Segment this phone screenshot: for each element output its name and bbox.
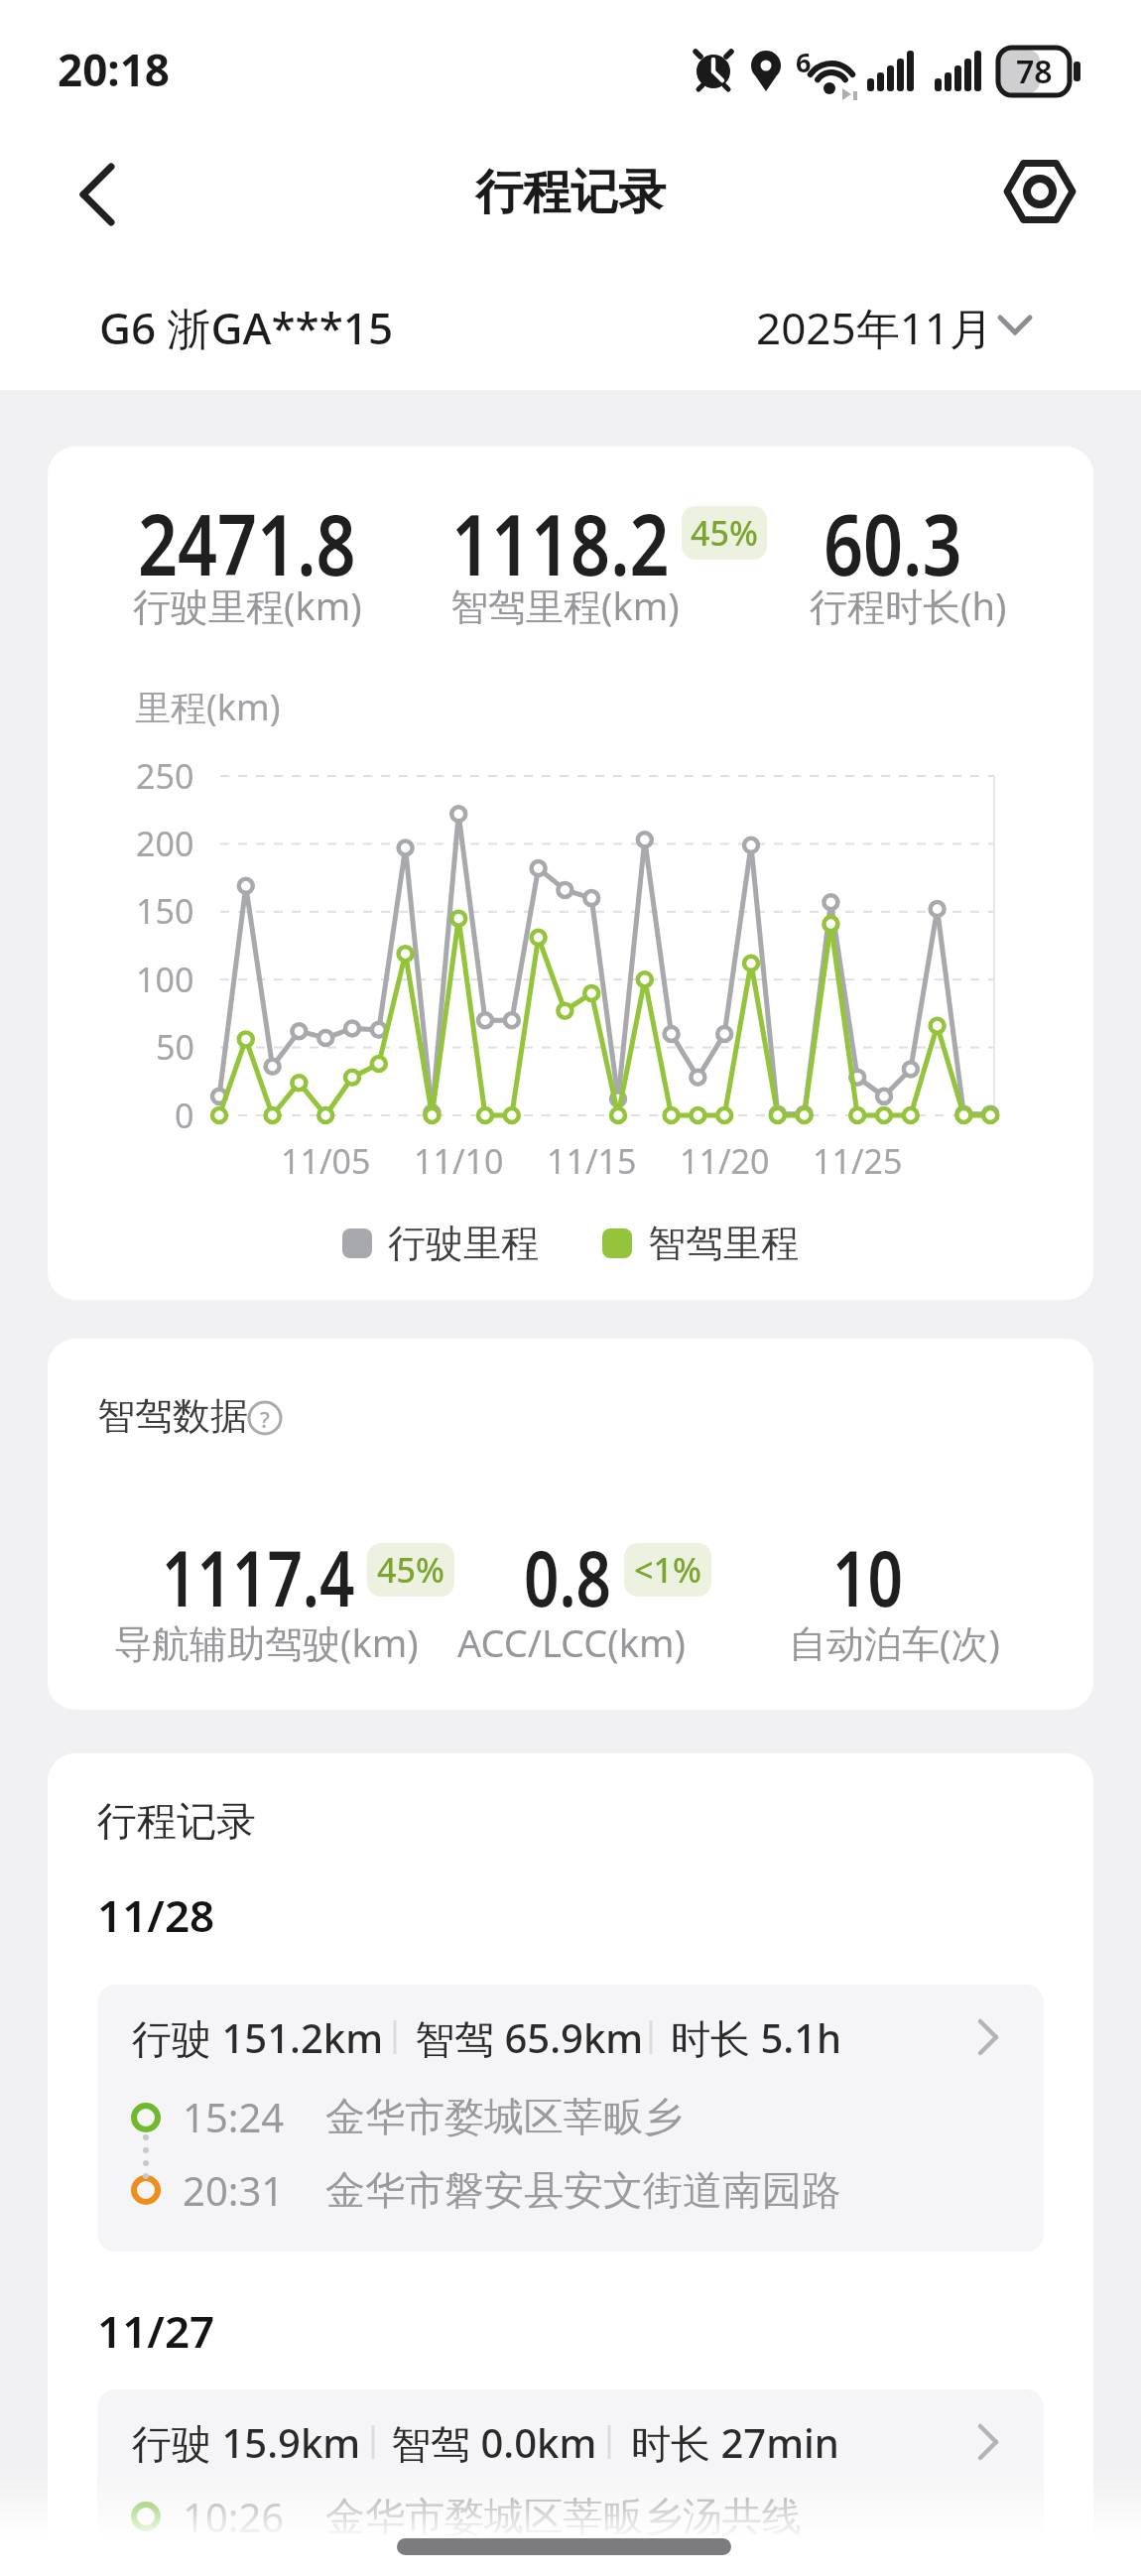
- staticText: 智驾里程: [648, 1220, 799, 1267]
- staticText: 行程时长(h): [810, 580, 1007, 631]
- staticText: 60.3: [824, 484, 962, 581]
- button[interactable]: [97, 2389, 1044, 2576]
- staticText: 自动泊车(次): [789, 1616, 1000, 1668]
- button[interactable]: [97, 1985, 1044, 2252]
- staticText: 金华市婺城区莘畈乡汤共线: [325, 2492, 802, 2541]
- staticText: 1118.2: [451, 484, 670, 581]
- staticText: 行程记录: [97, 1796, 256, 1846]
- staticText: 11/28: [97, 1885, 215, 1941]
- staticText: 智驾里程(km): [450, 580, 680, 631]
- staticText: 10:26: [183, 2490, 285, 2543]
- staticText: 金华市婺城区莘畈乡: [325, 2092, 683, 2141]
- staticText: 15:24: [183, 2090, 285, 2143]
- staticText: 行程记录: [475, 163, 666, 222]
- staticText: 2025年11月: [756, 298, 994, 353]
- staticText: 导航辅助驾驶(km): [114, 1616, 419, 1668]
- staticText: 11/15: [547, 1138, 637, 1184]
- staticText: 行驶里程: [388, 1220, 539, 1267]
- staticText: 45%: [691, 510, 758, 556]
- staticText: 10: [832, 1526, 903, 1614]
- staticText: 智驾 65.9km: [415, 2010, 644, 2065]
- staticText: ?: [260, 1404, 270, 1432]
- button[interactable]: [1000, 154, 1079, 229]
- staticText: 11/27: [97, 2301, 215, 2357]
- staticText: 6: [796, 44, 812, 75]
- staticText: 11/10: [414, 1138, 504, 1184]
- staticText: 行驶 151.2km: [132, 2010, 384, 2065]
- staticText: 11/05: [281, 1138, 371, 1184]
- staticText: 时长 5.1h: [671, 2010, 842, 2065]
- staticText: 50: [156, 1024, 194, 1070]
- staticText: 2471.8: [138, 484, 356, 581]
- staticText: <1%: [634, 1547, 701, 1593]
- staticText: 20:18: [58, 40, 171, 95]
- staticText: 11/20: [680, 1138, 770, 1184]
- staticText: 200: [136, 821, 194, 866]
- staticText: 250: [136, 753, 194, 799]
- staticText: 行驶 15.9km: [132, 2415, 361, 2470]
- staticText: 11/25: [813, 1138, 903, 1184]
- staticText: 0: [175, 1093, 194, 1138]
- staticText: 0.8: [524, 1526, 612, 1614]
- staticText: G6 浙GA***15: [99, 298, 394, 353]
- staticText: 时长 27min: [631, 2415, 839, 2470]
- staticText: 金华市磐安县安文街道南园路: [325, 2165, 841, 2215]
- button[interactable]: [734, 288, 1042, 357]
- staticText: 100: [136, 957, 194, 1002]
- staticText: ACC/LCC(km): [457, 1616, 686, 1668]
- staticText: 1117.4: [162, 1526, 355, 1614]
- staticText: 智驾 0.0km: [391, 2415, 597, 2470]
- staticText: 150: [136, 888, 194, 934]
- staticText: 智驾数据: [97, 1392, 248, 1440]
- staticText: 行驶里程(km): [133, 580, 362, 631]
- staticText: 78: [1016, 50, 1053, 93]
- button[interactable]: [65, 159, 135, 228]
- staticText: 20:31: [183, 2163, 285, 2217]
- staticText: 45%: [377, 1547, 444, 1593]
- staticText: 里程(km): [135, 683, 281, 731]
